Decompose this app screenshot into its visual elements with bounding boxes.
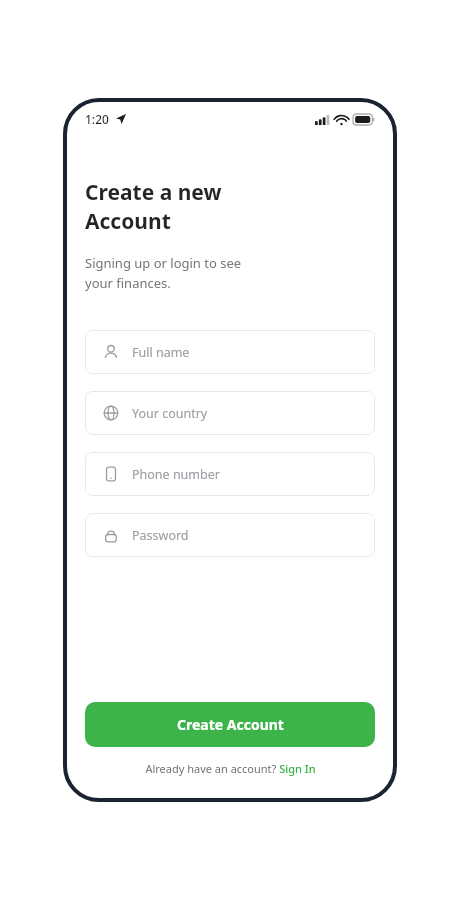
- staticText: Full name: [132, 344, 190, 361]
- button[interactable]: Your country: [85, 391, 375, 435]
- button[interactable]: Already have an account? Sign In: [145, 761, 316, 776]
- staticText: Password: [132, 527, 189, 544]
- staticText: Signing up or login to see your finances…: [85, 254, 242, 292]
- button[interactable]: Phone number: [85, 452, 375, 496]
- button[interactable]: Full name: [85, 330, 375, 374]
- button[interactable]: Password: [85, 513, 375, 557]
- staticText: Create Account: [177, 715, 284, 734]
- staticText: Already have an account? Sign In: [145, 761, 316, 776]
- staticText: Create a new: [85, 178, 222, 207]
- staticText: Your country: [132, 405, 208, 422]
- button[interactable]: Create Account: [85, 702, 375, 747]
- staticText: 1:20: [85, 111, 109, 127]
- staticText: Phone number: [132, 466, 220, 483]
- staticText: Account: [85, 207, 171, 236]
